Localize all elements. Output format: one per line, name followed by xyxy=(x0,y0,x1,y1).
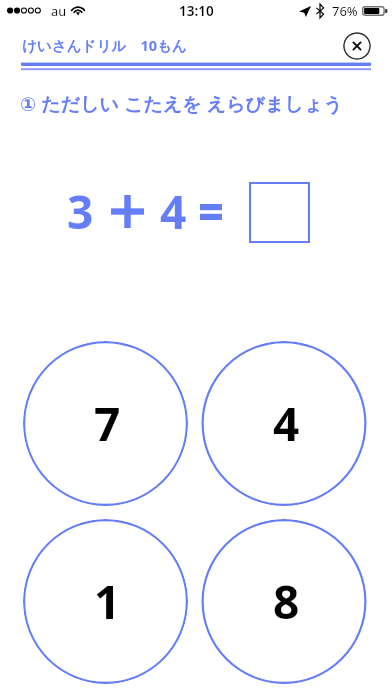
staticText: 1 xyxy=(94,570,121,633)
staticText: 4 xyxy=(273,392,300,455)
staticText: 13:10 xyxy=(179,2,214,20)
staticText: ① ただしい こたえを えらびましょう xyxy=(20,91,343,117)
button[interactable]: Close xyxy=(343,32,371,60)
button[interactable]: 4 xyxy=(201,341,367,506)
button[interactable]: 8 xyxy=(201,519,367,684)
button[interactable]: けいさんドリル 10もん xyxy=(22,35,187,55)
staticText: けいさんドリル 10もん xyxy=(22,35,187,55)
staticText: au xyxy=(51,2,67,19)
button[interactable]: 7 xyxy=(23,341,188,506)
staticText: 7 xyxy=(94,392,121,455)
staticText: 76% xyxy=(332,2,358,20)
staticText: 8 xyxy=(273,570,300,633)
staticText: 4 xyxy=(160,180,187,243)
staticText: 3 xyxy=(67,180,94,243)
button[interactable]: 1 xyxy=(23,519,188,684)
